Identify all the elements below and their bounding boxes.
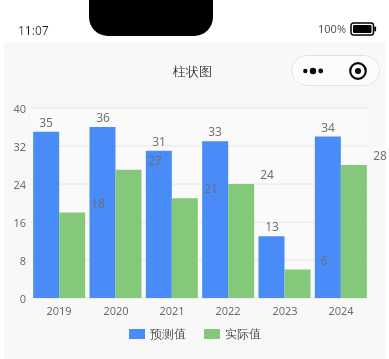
staticText: 13 (246, 218, 298, 234)
staticText: 31 (133, 133, 185, 149)
staticText: 100% (318, 21, 347, 36)
staticText: 8 (2, 253, 26, 268)
staticText: 实际值 (225, 326, 261, 341)
staticText: 2024 (315, 303, 367, 318)
staticText: 35 (20, 114, 72, 130)
staticText: 40 (2, 101, 26, 116)
staticText: 33 (189, 123, 241, 139)
staticText: 36 (77, 109, 129, 125)
staticText: 2022 (202, 303, 254, 318)
staticText: 34 (302, 119, 354, 135)
staticText: 24 (241, 166, 293, 182)
staticText: 24 (2, 177, 26, 192)
staticText: 0 (2, 291, 26, 306)
staticText: 11:07 (18, 22, 49, 38)
staticText: 2021 (146, 303, 198, 318)
button[interactable]: 实际值 (202, 324, 263, 343)
button[interactable]: Close mini program (335, 55, 380, 86)
staticText: 6 (298, 252, 350, 268)
staticText: 2019 (33, 303, 85, 318)
staticText: 16 (2, 215, 26, 230)
staticText: 预测值 (150, 326, 186, 341)
staticText: 柱状图 (173, 63, 212, 79)
button[interactable]: 预测值 (127, 324, 188, 343)
staticText: 2023 (259, 303, 311, 318)
staticText: 28 (354, 147, 389, 163)
staticText: 32 (2, 139, 26, 154)
button[interactable]: More options (291, 55, 335, 86)
staticText: 21 (185, 180, 237, 196)
staticText: 27 (129, 152, 181, 168)
staticText: 18 (72, 195, 124, 211)
staticText: 2020 (90, 303, 142, 318)
